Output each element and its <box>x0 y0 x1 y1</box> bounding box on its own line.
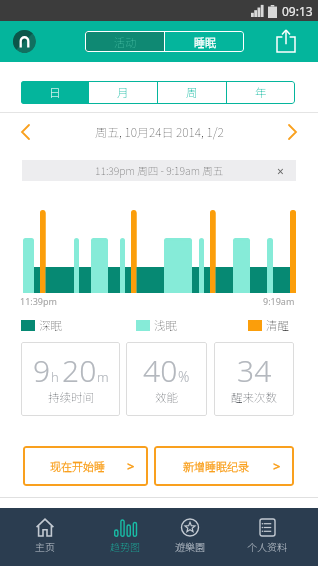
button[interactable]: 新增睡眠纪录 <box>154 446 294 486</box>
staticText: 周 <box>186 84 198 101</box>
staticText: 11:39pm 周四 - 9:19am 周五 <box>95 163 224 178</box>
staticText: 深眠 <box>39 317 62 334</box>
button[interactable]: 现在开始睡 <box>23 446 148 486</box>
staticText: 9:19am <box>263 295 295 307</box>
button[interactable]: 睡眠 <box>165 31 244 52</box>
button[interactable] <box>276 30 296 53</box>
staticText: 40 <box>143 350 178 391</box>
staticText: 遊樂園 <box>175 539 205 553</box>
staticText: > <box>273 457 281 475</box>
button[interactable]: 40 <box>126 342 207 416</box>
staticText: 11:39pm <box>20 295 57 307</box>
staticText: 醒来次数 <box>231 389 277 406</box>
staticText: 浅眠 <box>154 317 177 334</box>
button[interactable]: 遊樂園 <box>160 508 220 566</box>
button[interactable]: 主页 <box>15 508 75 566</box>
staticText: % <box>178 367 190 386</box>
staticText: 现在开始睡 <box>50 458 105 474</box>
staticText: 个人资料 <box>247 539 287 553</box>
staticText: m <box>97 368 109 386</box>
staticText: 活动 <box>114 34 136 50</box>
button[interactable] <box>289 125 296 139</box>
button[interactable]: 年 <box>227 81 295 104</box>
staticText: 趋势图 <box>110 539 140 553</box>
staticText: 清醒 <box>266 317 289 334</box>
button[interactable]: 趋势图 <box>95 508 155 566</box>
staticText: 月 <box>117 84 129 101</box>
staticText: > <box>127 457 135 475</box>
staticText: 效能 <box>155 389 178 406</box>
button[interactable]: × <box>277 163 284 179</box>
staticText: 周五, 10月24日 2014, 1/2 <box>95 123 224 140</box>
staticText: 9 <box>33 350 51 391</box>
button[interactable] <box>13 30 36 53</box>
button[interactable]: 周 <box>158 81 226 104</box>
staticText: 年 <box>255 84 267 101</box>
button[interactable]: 9 <box>21 342 120 416</box>
staticText: 20 <box>62 350 97 391</box>
staticText: h <box>51 368 59 386</box>
button[interactable]: 活动 <box>85 31 164 52</box>
staticText: 主页 <box>35 539 55 553</box>
button[interactable]: 日 <box>21 81 88 104</box>
button[interactable]: 个人资料 <box>237 508 297 566</box>
staticText: 09:13 <box>282 3 313 19</box>
button[interactable] <box>22 125 29 139</box>
staticText: 新增睡眠纪录 <box>183 458 249 474</box>
staticText: 睡眠 <box>194 34 216 50</box>
button[interactable]: 月 <box>89 81 157 104</box>
staticText: 持续时间 <box>48 389 94 406</box>
staticText: 34 <box>237 350 272 391</box>
button[interactable]: 34 <box>214 342 294 416</box>
staticText: 日 <box>49 84 61 101</box>
